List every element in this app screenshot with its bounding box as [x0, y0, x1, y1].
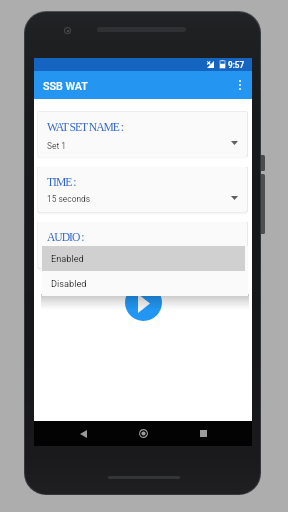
button[interactable]: Play [125, 284, 162, 321]
staticText: Set 1 [47, 141, 66, 151]
staticText: WAT SET NAME : [47, 121, 124, 134]
button[interactable]: Back [72, 421, 94, 446]
staticText: TIME : [47, 176, 76, 189]
button[interactable]: AUDIO : [38, 222, 247, 268]
button[interactable]: More options [228, 73, 252, 97]
button[interactable]: Disabled [42, 271, 248, 296]
staticText: 15 seconds [47, 194, 91, 204]
button[interactable]: TIME : [38, 167, 247, 212]
staticText: Enabled [51, 253, 84, 264]
button[interactable]: Enabled [42, 246, 245, 271]
staticText: AUDIO : [47, 231, 84, 244]
button[interactable]: Recent apps [192, 421, 214, 446]
button[interactable]: Home [132, 421, 154, 446]
staticText: SSB WAT [43, 80, 88, 93]
staticText: Disabled [51, 278, 87, 289]
button[interactable]: WAT SET NAME : [38, 112, 247, 157]
staticText: 9:57 [228, 60, 245, 70]
